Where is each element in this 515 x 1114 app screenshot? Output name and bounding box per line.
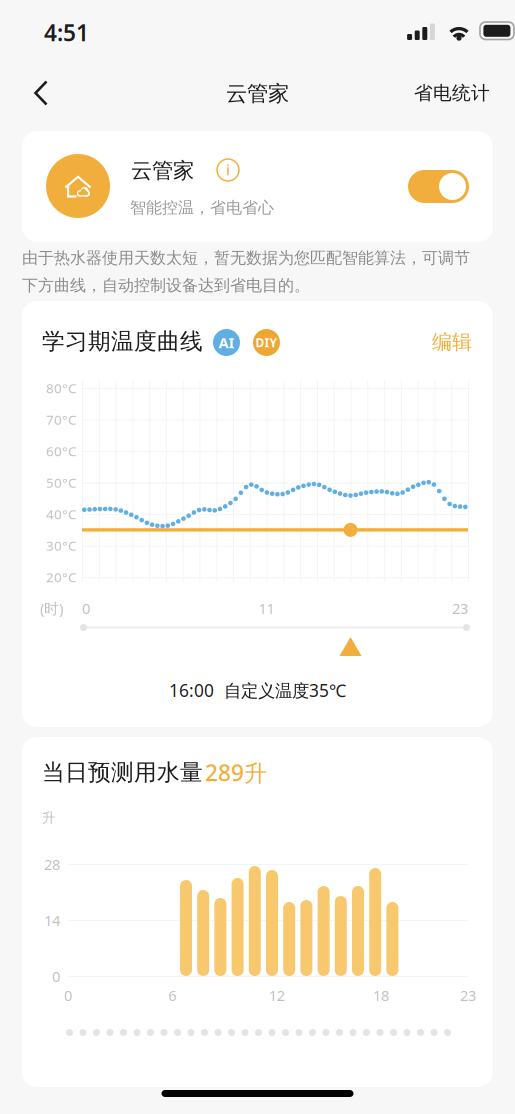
staticText: 云管家 (131, 157, 194, 184)
staticText: 6 (168, 986, 176, 1005)
staticText: 50°C (46, 474, 76, 491)
button[interactable]: 云管家开关 (408, 170, 469, 203)
staticText: 23 (460, 986, 476, 1005)
staticText: DIY (255, 334, 277, 350)
staticText: 智能控温，省电省心 (130, 198, 274, 217)
staticText: (时) (40, 599, 63, 618)
staticText: 升 (42, 810, 55, 826)
staticText: 0 (82, 599, 90, 618)
button[interactable]: 编辑 (392, 327, 472, 357)
staticText: AI (218, 333, 234, 352)
staticText: 23 (452, 599, 468, 618)
button[interactable]: 省电统计 (404, 72, 500, 114)
staticText: 80°C (46, 379, 76, 397)
staticText: 11 (259, 599, 275, 618)
staticText: 20°C (46, 568, 76, 586)
staticText: 60°C (46, 442, 76, 460)
staticText: 4:51 (44, 17, 89, 47)
staticText: 编辑 (432, 330, 472, 354)
staticText: 0 (52, 967, 60, 986)
button[interactable]: 返回 (10, 68, 72, 118)
staticText: i (226, 160, 230, 179)
staticText: 云管家 (226, 80, 289, 107)
button[interactable]: 说明 (206, 148, 250, 192)
staticText: 40°C (46, 505, 76, 523)
staticText: 12 (269, 986, 285, 1005)
staticText: 0 (64, 986, 72, 1005)
staticText: 30°C (46, 537, 76, 554)
staticText: 当日预测用水量 (42, 758, 203, 786)
staticText: 省电统计 (414, 81, 490, 104)
staticText: 学习期温度曲线 (42, 327, 203, 355)
staticText: 16:00 自定义温度35℃ (169, 679, 346, 702)
staticText: 70°C (46, 411, 76, 428)
staticText: 18 (373, 986, 389, 1005)
staticText: 28 (44, 855, 60, 874)
staticText: 289升 (205, 757, 267, 787)
staticText: 由于热水器使用天数太短，暂无数据为您匹配智能算法，可调节下方曲线，自动控制设备达… (22, 248, 470, 295)
staticText: 14 (44, 911, 60, 930)
